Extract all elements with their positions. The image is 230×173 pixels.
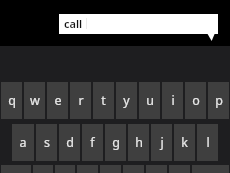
staticText: d bbox=[66, 134, 74, 151]
staticText: f bbox=[90, 134, 95, 151]
button[interactable]: i bbox=[161, 82, 184, 119]
button[interactable]: l bbox=[196, 124, 219, 161]
button[interactable]: z bbox=[32, 165, 54, 173]
staticText: w bbox=[30, 92, 40, 109]
button[interactable]: x bbox=[54, 165, 76, 173]
button[interactable]: f bbox=[81, 124, 104, 161]
staticText: j bbox=[160, 134, 164, 151]
button[interactable]: j bbox=[150, 124, 173, 161]
button[interactable]: r bbox=[69, 82, 92, 119]
button[interactable]: m bbox=[168, 165, 191, 173]
button[interactable]: q bbox=[0, 82, 23, 119]
staticText: q bbox=[8, 92, 16, 109]
button[interactable]: y bbox=[115, 82, 138, 119]
button[interactable]: call bbox=[59, 14, 218, 34]
staticText: p bbox=[215, 92, 223, 109]
button[interactable]: u bbox=[138, 82, 161, 119]
staticText: i bbox=[171, 92, 175, 109]
staticText: g bbox=[112, 134, 120, 151]
button[interactable]: n bbox=[145, 165, 168, 173]
staticText: o bbox=[192, 92, 200, 109]
staticText: r bbox=[78, 92, 84, 109]
staticText: l bbox=[206, 134, 210, 151]
button[interactable]: Shift bbox=[0, 165, 32, 173]
staticText: t bbox=[101, 92, 106, 109]
button[interactable]: c bbox=[76, 165, 99, 173]
staticText: e bbox=[54, 92, 62, 109]
button[interactable]: v bbox=[99, 165, 122, 173]
staticText: u bbox=[146, 92, 154, 109]
button[interactable]: g bbox=[104, 124, 127, 161]
button[interactable]: w bbox=[23, 82, 46, 119]
button[interactable]: k bbox=[173, 124, 196, 161]
staticText: s bbox=[44, 134, 50, 151]
staticText: k bbox=[181, 134, 188, 151]
button[interactable]: t bbox=[92, 82, 115, 119]
button[interactable]: Backspace bbox=[191, 165, 230, 173]
staticText: call bbox=[64, 16, 83, 31]
button[interactable]: o bbox=[184, 82, 207, 119]
button[interactable]: d bbox=[58, 124, 81, 161]
button[interactable]: b bbox=[122, 165, 145, 173]
button[interactable]: a bbox=[11, 124, 35, 161]
staticText: h bbox=[135, 134, 143, 151]
button[interactable]: p bbox=[207, 82, 230, 119]
staticText: a bbox=[19, 134, 27, 151]
button[interactable]: e bbox=[46, 82, 69, 119]
staticText: y bbox=[123, 92, 130, 109]
button[interactable]: h bbox=[127, 124, 150, 161]
button[interactable]: s bbox=[35, 124, 58, 161]
